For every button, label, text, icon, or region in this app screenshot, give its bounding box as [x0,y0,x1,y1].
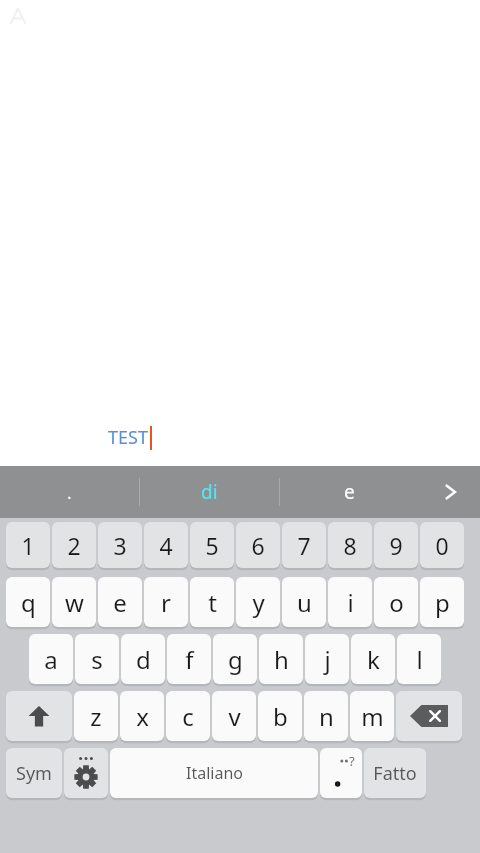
staticText: j [324,643,331,676]
staticText: 8 [343,530,357,561]
staticText: 4 [159,530,173,561]
button[interactable]: b [258,691,302,741]
staticText: g [228,643,243,676]
staticText: 2 [67,530,81,561]
button[interactable]: 1 [6,522,50,568]
staticText: 1 [21,530,35,561]
staticText: . [67,481,72,504]
staticText: e [113,586,127,619]
staticText: Fatto [373,761,417,786]
staticText: 7 [297,530,311,561]
button[interactable]: e [98,577,142,627]
button[interactable]: r [144,577,188,627]
button[interactable]: 6 [236,522,280,568]
staticText: d [136,643,151,676]
button[interactable]: g [213,634,257,684]
button[interactable]: 5 [190,522,234,568]
staticText: p [435,586,450,619]
staticText: l [416,643,423,676]
staticText: Sym [16,761,52,786]
button[interactable]: k [351,634,395,684]
staticText: 5 [205,530,219,561]
staticText: f [185,643,194,676]
button[interactable]: More suggestions [419,466,480,518]
button[interactable]: l [397,634,441,684]
staticText: i [347,586,354,619]
staticText: z [90,700,102,733]
button[interactable]: m [350,691,394,741]
staticText: m [361,700,384,733]
button[interactable]: a [29,634,73,684]
button[interactable]: Backspace [396,691,462,741]
staticText: ? [349,752,355,770]
staticText: r [161,586,171,619]
button[interactable]: w [52,577,96,627]
staticText: k [367,643,380,676]
staticText: b [273,700,288,733]
staticText: e [344,479,355,505]
button[interactable]: 0 [420,522,464,568]
button[interactable]: o [374,577,418,627]
staticText: c [182,700,194,733]
staticText: o [389,586,404,619]
staticText: h [274,643,289,676]
button[interactable]: y [236,577,280,627]
button[interactable]: j [305,634,349,684]
staticText: di [201,479,218,505]
button[interactable]: f [167,634,211,684]
button[interactable]: s [75,634,119,684]
staticText: y [252,586,265,619]
staticText: u [297,586,312,619]
staticText: q [21,586,36,619]
button[interactable]: Fatto [364,748,426,798]
button[interactable]: x [120,691,164,741]
staticText: n [319,700,334,733]
button[interactable]: 3 [98,522,142,568]
button[interactable]: d [121,634,165,684]
button[interactable]: h [259,634,303,684]
button[interactable]: z [74,691,118,741]
staticText: 3 [113,530,127,561]
button[interactable]: i [328,577,372,627]
staticText: s [91,643,103,676]
staticText: TEST [108,425,148,450]
staticText: 0 [435,530,449,561]
button[interactable]: Space [110,748,318,798]
button[interactable]: 9 [374,522,418,568]
staticText: v [228,700,241,733]
button[interactable]: Period [320,748,362,798]
staticText: w [65,586,84,619]
button[interactable]: e [280,466,419,518]
button[interactable]: Shift [6,691,72,741]
button[interactable]: Keyboard settings [64,748,108,798]
button[interactable]: c [166,691,210,741]
button[interactable]: v [212,691,256,741]
button[interactable]: di [140,466,279,518]
button[interactable]: Sym [6,748,62,798]
button[interactable]: q [6,577,50,627]
staticText: a [44,643,58,676]
staticText: t [208,586,217,619]
staticText: 9 [389,530,403,561]
button[interactable]: t [190,577,234,627]
staticText: x [136,700,149,733]
staticText: Italiano [186,762,243,784]
button[interactable]: 8 [328,522,372,568]
button[interactable]: 2 [52,522,96,568]
button[interactable]: 7 [282,522,326,568]
button[interactable]: 4 [144,522,188,568]
button[interactable]: p [420,577,464,627]
staticText: 6 [251,530,265,561]
button[interactable]: u [282,577,326,627]
button[interactable]: n [304,691,348,741]
